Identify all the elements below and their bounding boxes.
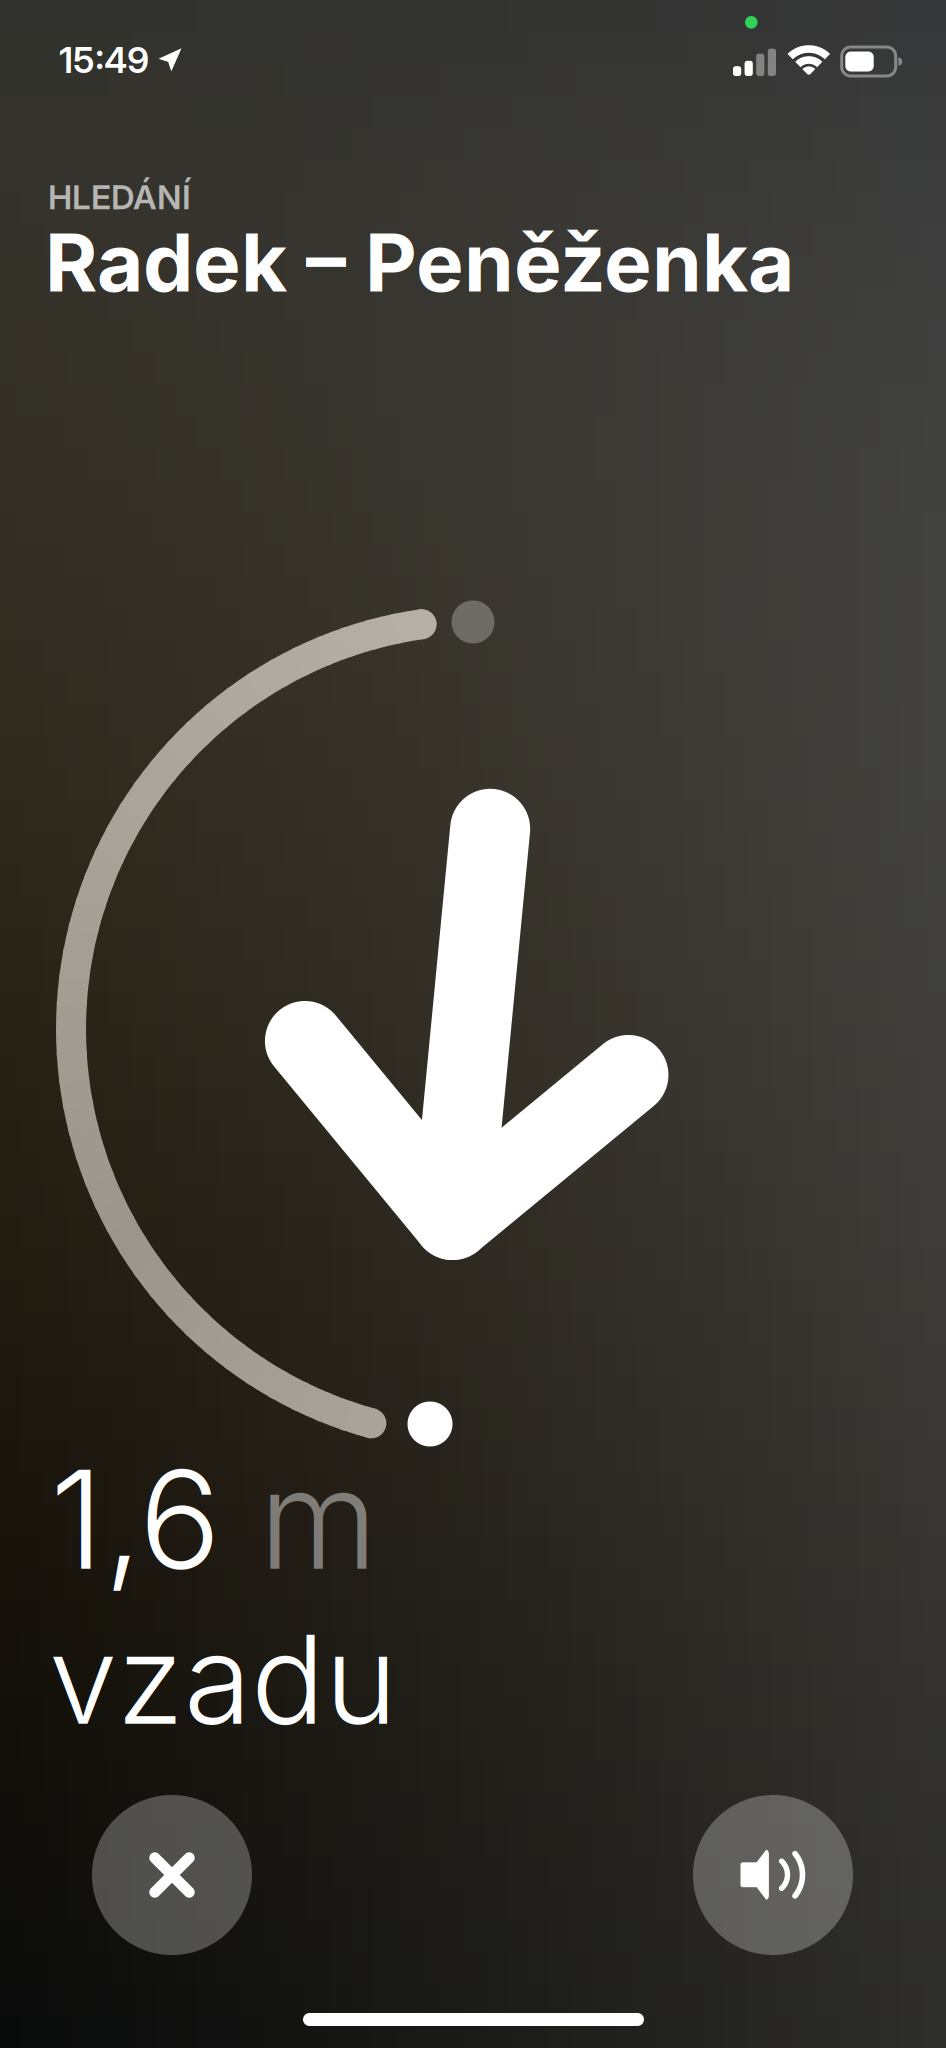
- staticText: vzadu: [49, 1605, 397, 1753]
- button[interactable]: Přehrát zvuk: [693, 1795, 853, 1955]
- staticText: HLEDÁNÍ: [48, 177, 191, 217]
- staticText: m: [259, 1437, 378, 1602]
- staticText: Radek – Peněženka: [45, 214, 794, 311]
- button[interactable]: Zavřít: [92, 1795, 252, 1955]
- staticText: 15:49: [59, 38, 149, 82]
- staticText: 1,6: [50, 1437, 259, 1602]
